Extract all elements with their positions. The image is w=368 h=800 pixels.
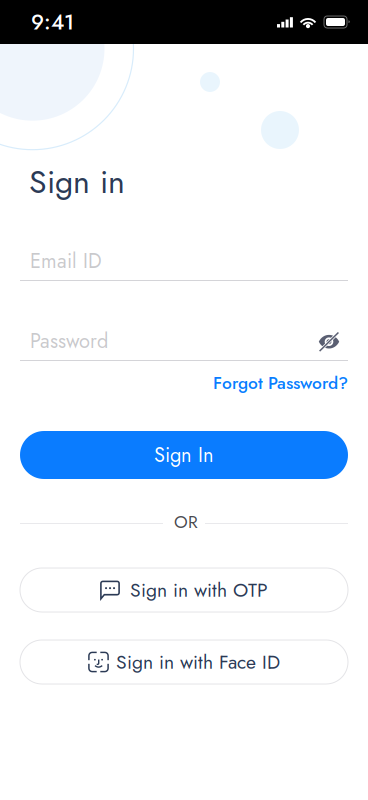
staticText: Sign in with Face ID — [116, 648, 280, 676]
staticText: Sign in with OTP — [130, 576, 268, 604]
button[interactable]: Show password — [311, 325, 347, 359]
button[interactable]: Sign in with OTP — [20, 568, 348, 612]
staticText: Password — [30, 326, 108, 355]
button[interactable]: Sign In — [20, 431, 348, 479]
staticText: OR — [174, 509, 198, 534]
staticText: Sign In — [154, 440, 214, 469]
staticText: 9:41 — [31, 7, 74, 37]
button[interactable]: Sign in with Face ID — [20, 640, 348, 684]
button[interactable]: Forgot Password? — [168, 373, 348, 393]
staticText: Email ID — [30, 246, 102, 275]
staticText: Forgot Password? — [213, 370, 348, 395]
staticText: Sign in — [29, 159, 125, 205]
